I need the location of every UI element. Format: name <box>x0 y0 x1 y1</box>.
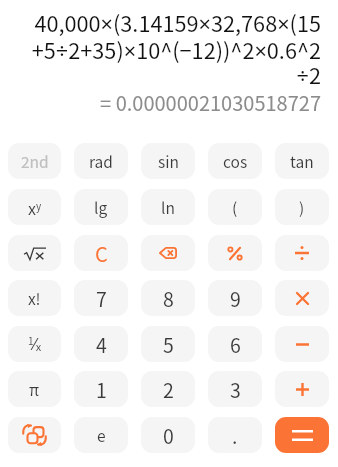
button[interactable]: ln <box>141 189 195 225</box>
staticText: rad <box>89 150 113 172</box>
staticText: 3 <box>230 375 241 403</box>
button[interactable]: 4 <box>74 326 128 362</box>
other: Plus <box>296 383 309 396</box>
button[interactable]: 8 <box>141 280 195 316</box>
button[interactable]: tan <box>275 143 329 179</box>
other: Minus <box>296 343 309 346</box>
staticText: ( <box>232 196 238 218</box>
staticText: +5÷2+35)×10^(−12))^2×0.6^2 <box>0 34 321 66</box>
staticText: 4 <box>96 330 107 358</box>
staticText: sin <box>158 150 179 172</box>
button[interactable]: . <box>208 417 262 453</box>
button[interactable]: lg <box>74 189 128 225</box>
button[interactable]: Plus <box>275 371 329 407</box>
staticText: ÷2 <box>0 59 321 91</box>
button[interactable]: Square root <box>8 235 61 271</box>
button[interactable]: ) <box>275 189 329 225</box>
other: Convert units <box>22 424 47 446</box>
button[interactable]: Equals <box>275 417 329 453</box>
staticText: tan <box>290 150 314 172</box>
staticText: 5 <box>163 330 174 358</box>
button[interactable]: 2 <box>141 371 195 407</box>
staticText: 2nd <box>21 150 49 172</box>
other: Equals <box>292 430 313 441</box>
staticText: ) <box>299 196 305 218</box>
staticText: 7 <box>96 284 107 312</box>
button[interactable]: 1⁄x <box>8 326 61 362</box>
staticText: cos <box>223 150 248 172</box>
staticText: 40,000×(3.14159×32,768×(15 <box>0 7 321 39</box>
staticText: 1⁄x <box>28 333 42 355</box>
button[interactable]: 2nd <box>8 143 61 179</box>
button[interactable]: Divide <box>275 235 329 271</box>
button[interactable]: x! <box>8 280 61 316</box>
staticText: lg <box>94 196 108 218</box>
staticText: C <box>95 239 108 268</box>
other: Divide <box>295 246 309 260</box>
button[interactable]: 5 <box>141 326 195 362</box>
staticText: 6 <box>230 330 241 358</box>
staticText: e <box>97 424 106 446</box>
staticText: x! <box>28 287 41 309</box>
button[interactable]: rad <box>74 143 128 179</box>
button[interactable]: sin <box>141 143 195 179</box>
button[interactable]: π <box>8 371 61 407</box>
button[interactable]: Backspace <box>141 235 195 271</box>
other: Multiply <box>297 293 308 304</box>
button[interactable]: 9 <box>208 280 262 316</box>
button[interactable]: 1 <box>74 371 128 407</box>
button[interactable]: cos <box>208 143 262 179</box>
button[interactable]: e <box>74 417 128 453</box>
other: Square root <box>24 246 46 261</box>
button[interactable]: 6 <box>208 326 262 362</box>
other: Backspace <box>159 247 177 259</box>
button[interactable]: 7 <box>74 280 128 316</box>
button[interactable]: Minus <box>275 326 329 362</box>
staticText: π <box>29 378 40 400</box>
staticText: 1 <box>96 375 107 403</box>
button[interactable]: C <box>74 235 128 271</box>
button[interactable]: 0 <box>141 417 195 453</box>
button[interactable]: Percent <box>208 235 262 271</box>
staticText: 9 <box>230 284 241 312</box>
button[interactable]: 3 <box>208 371 262 407</box>
button[interactable]: ( <box>208 189 262 225</box>
staticText: 2 <box>163 375 174 403</box>
staticText: . <box>232 421 238 449</box>
button[interactable]: xy <box>8 189 61 225</box>
staticText: 0 <box>163 421 174 449</box>
button[interactable]: Multiply <box>275 280 329 316</box>
staticText: 8 <box>163 284 174 312</box>
staticText: = 0.00000021030518727 <box>0 88 321 117</box>
button[interactable]: Convert units <box>8 417 61 453</box>
staticText: xy <box>28 196 42 219</box>
other: Percent <box>228 247 242 260</box>
staticText: ln <box>161 196 175 218</box>
